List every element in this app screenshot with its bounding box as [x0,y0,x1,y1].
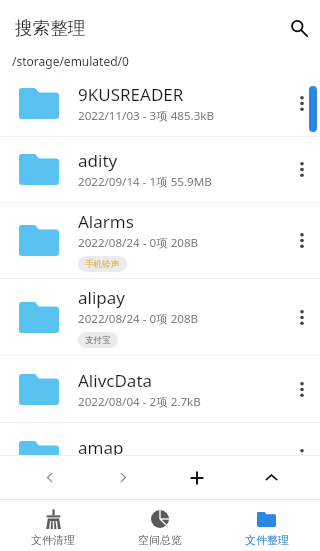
button[interactable]: More options [284,279,320,355]
staticText: 2022/08/24 - 0项 208B [78,235,199,251]
staticText: 2022/11/03 - 3项 485.3kB [78,108,215,124]
staticText: adity [78,149,118,172]
button[interactable]: More options [284,356,320,422]
button[interactable]: Search [272,2,320,50]
staticText: /storage/emulated/0 [12,53,129,69]
button[interactable]: More options [284,137,320,202]
staticText: Alarms [78,210,134,233]
staticText: 文件清理 [31,533,75,547]
button[interactable]: More options [284,203,320,278]
button[interactable]: Alarms [0,203,320,278]
staticText: 搜索整理 [15,17,86,39]
button[interactable]: adity [0,137,320,202]
staticText: 2022/08/24 - 0项 208B [78,311,199,327]
button[interactable]: 空间总览 [106,500,213,547]
button[interactable]: 文件清理 [0,500,106,547]
button[interactable]: More options [284,423,320,455]
button[interactable]: 9KUSREADER [0,70,320,136]
staticText: 文件整理 [245,533,289,547]
button[interactable]: Next [86,456,160,499]
button[interactable]: More options [284,70,320,136]
staticText: 9KUSREADER [78,83,184,106]
button[interactable]: 文件整理 [213,500,320,547]
staticText: alipay [78,286,125,309]
staticText: 支付宝 [85,335,111,346]
button[interactable]: alipay [0,279,320,355]
staticText: 2022/09/14 - 1项 55.9MB [78,174,212,190]
button[interactable]: Add [160,456,234,499]
staticText: 2022/08/04 - 2项 2.7kB [78,394,201,410]
staticText: AlivcData [78,369,153,392]
button[interactable]: Up [234,456,308,499]
staticText: 空间总览 [138,533,182,547]
button[interactable]: Previous [12,456,86,499]
staticText: amap [78,436,124,455]
button[interactable]: amap [0,423,320,455]
button[interactable]: AlivcData [0,356,320,422]
staticText: 手机铃声 [85,259,120,270]
